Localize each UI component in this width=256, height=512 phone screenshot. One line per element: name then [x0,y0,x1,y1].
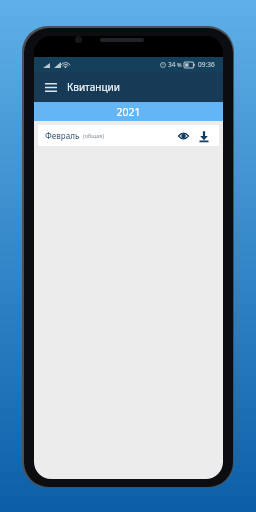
staticText: Квитанции [67,80,120,94]
staticText: % [177,61,182,68]
staticText: 09:36 [198,60,215,69]
staticText: 34 [168,60,176,69]
button[interactable]: Open navigation menu [40,76,62,98]
staticText: 2021 [116,105,141,119]
button[interactable]: Февраль [38,125,219,146]
staticText: (общая) [83,132,105,139]
button[interactable]: View receipt [175,128,191,144]
staticText: Февраль [45,130,80,141]
button[interactable]: 2021 [34,102,223,121]
button[interactable]: Download receipt [196,128,212,144]
